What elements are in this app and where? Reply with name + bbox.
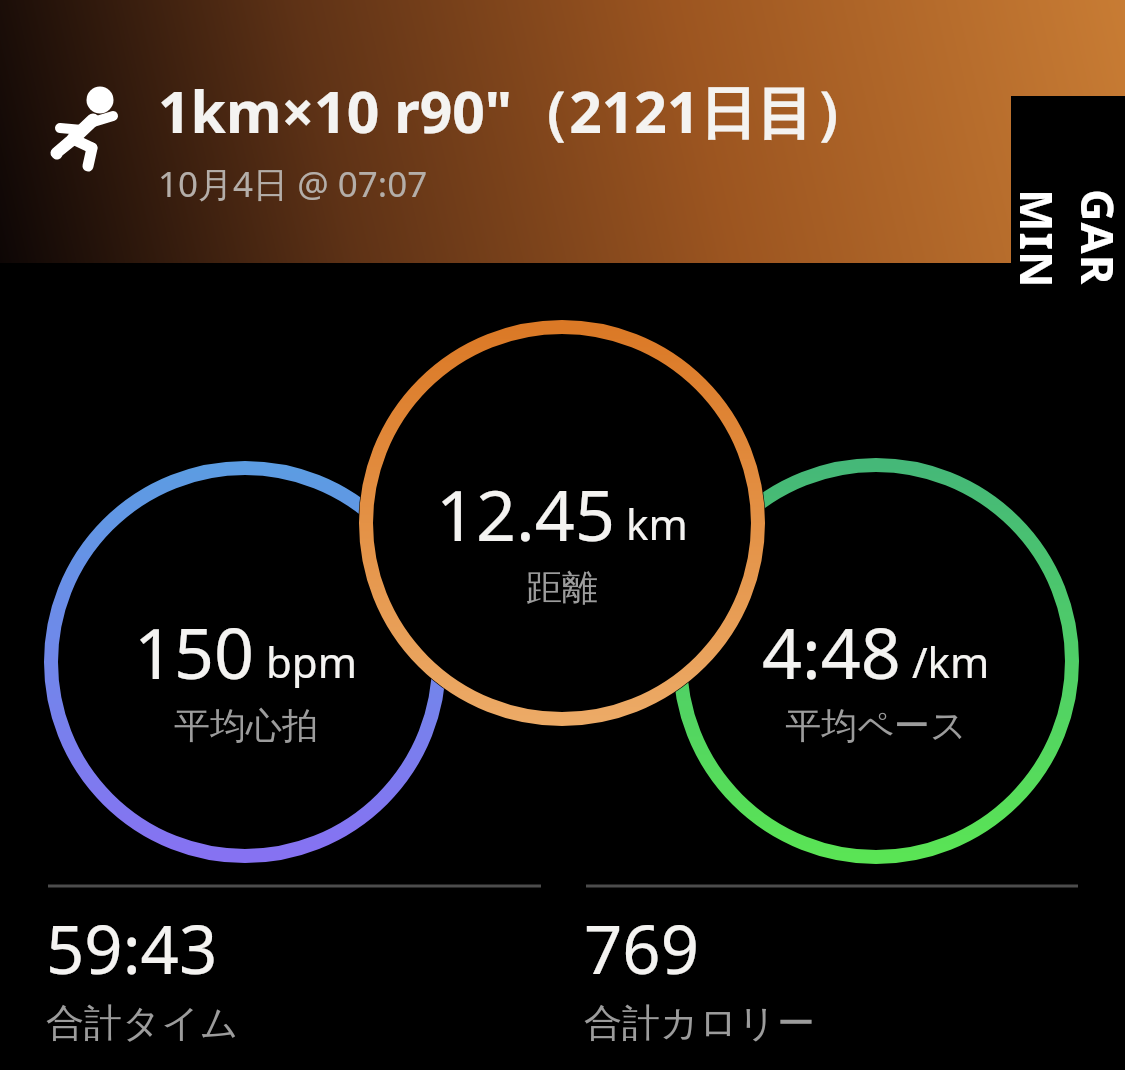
staticText: bpm [266, 633, 357, 690]
button[interactable]: 12.45 [312, 466, 812, 631]
staticText: 合計タイム [46, 999, 239, 1047]
button[interactable]: 769 [584, 902, 1076, 1057]
staticText: GARMIN [1007, 189, 1125, 303]
button[interactable]: 59:43 [46, 902, 538, 1057]
button[interactable]: 150 [0, 604, 495, 769]
staticText: 合計カロリー [584, 999, 815, 1047]
staticText: 59:43 [46, 902, 218, 993]
staticText: 1km×10 r90"（2121日目） [158, 72, 871, 150]
staticText: 平均ペース [785, 703, 967, 748]
staticText: 150 [134, 604, 255, 699]
other: Garmin [1011, 96, 1125, 396]
button[interactable]: 1km×10 r90"（2121日目） [158, 72, 871, 208]
staticText: 4:48 [762, 604, 901, 699]
staticText: 距離 [526, 565, 598, 610]
staticText: 769 [584, 902, 699, 993]
button[interactable]: 4:48 [626, 604, 1125, 769]
staticText: /km [912, 633, 990, 690]
staticText: 10月4日 @ 07:07 [158, 160, 428, 208]
staticText: 12.45 [436, 466, 615, 561]
staticText: km [626, 495, 688, 552]
staticText: 平均心拍 [174, 703, 318, 748]
